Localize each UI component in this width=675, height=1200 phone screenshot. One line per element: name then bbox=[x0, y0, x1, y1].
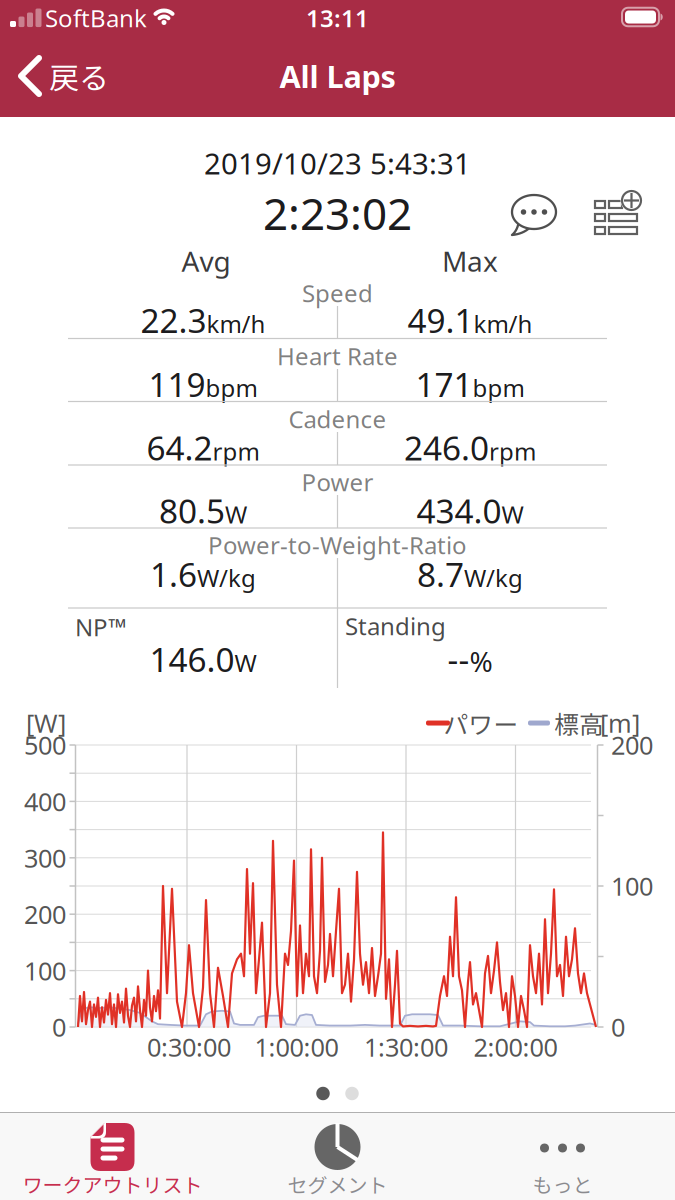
staticText: 1.6W/kg bbox=[150, 552, 256, 596]
staticText: 500 bbox=[24, 728, 66, 762]
staticText: 22.3km/h bbox=[140, 298, 265, 342]
button[interactable]: Comment bbox=[506, 191, 562, 241]
staticText: SoftBank bbox=[45, 2, 147, 34]
staticText: 300 bbox=[24, 841, 66, 875]
staticText: 0 bbox=[52, 1010, 66, 1044]
staticText: 100 bbox=[24, 954, 66, 987]
staticText: セグメント bbox=[287, 1169, 387, 1198]
staticText: 200 bbox=[611, 728, 653, 762]
staticText: Heart Rate bbox=[277, 340, 398, 372]
button[interactable]: 戻る bbox=[13, 50, 123, 102]
staticText: All Laps bbox=[279, 56, 395, 96]
staticText: 400 bbox=[24, 785, 66, 818]
staticText: NP™ bbox=[75, 611, 127, 643]
staticText: 8.7W/kg bbox=[417, 552, 523, 596]
staticText: もっと bbox=[532, 1169, 592, 1198]
staticText: 64.2rpm bbox=[146, 425, 259, 470]
staticText: --% bbox=[447, 637, 492, 681]
staticText: 49.1km/h bbox=[407, 298, 532, 342]
staticText: 戻る bbox=[49, 54, 109, 98]
staticText: 246.0rpm bbox=[404, 425, 536, 470]
staticText: 13:11 bbox=[306, 2, 369, 34]
button[interactable]: セグメント bbox=[225, 1113, 450, 1200]
staticText: Max bbox=[442, 242, 498, 280]
staticText: Speed bbox=[302, 277, 373, 309]
button[interactable]: ワークアウトリスト bbox=[0, 1113, 225, 1200]
staticText: 2:23:02 bbox=[263, 184, 412, 242]
staticText: 1:00:00 bbox=[254, 1030, 338, 1064]
staticText: Avg bbox=[181, 242, 230, 280]
staticText: 146.0W bbox=[149, 637, 256, 681]
staticText: 0 bbox=[611, 1010, 625, 1044]
staticText: 100 bbox=[611, 869, 653, 903]
button[interactable]: もっと bbox=[450, 1113, 675, 1200]
staticText: Power-to-Weight-Ratio bbox=[208, 529, 467, 561]
staticText: Cadence bbox=[288, 403, 386, 435]
staticText: 標高 bbox=[554, 705, 604, 741]
staticText: 2019/10/23 5:43:31 bbox=[204, 143, 471, 182]
staticText: 200 bbox=[24, 897, 66, 931]
staticText: 0:30:00 bbox=[147, 1030, 231, 1064]
staticText: ワークアウトリスト bbox=[22, 1169, 202, 1198]
staticText: 119bpm bbox=[148, 362, 257, 406]
staticText: 2:00:00 bbox=[473, 1030, 557, 1064]
staticText: 434.0W bbox=[416, 488, 523, 533]
button[interactable]: Add lap list bbox=[590, 190, 646, 240]
staticText: パワー bbox=[443, 705, 518, 741]
staticText: 1:30:00 bbox=[364, 1030, 448, 1064]
staticText: Power bbox=[301, 466, 373, 498]
staticText: 80.5W bbox=[159, 488, 247, 533]
staticText: 171bpm bbox=[415, 362, 524, 406]
staticText: [m] bbox=[600, 706, 640, 740]
staticText: [W] bbox=[26, 706, 66, 740]
staticText: Standing bbox=[345, 610, 446, 642]
